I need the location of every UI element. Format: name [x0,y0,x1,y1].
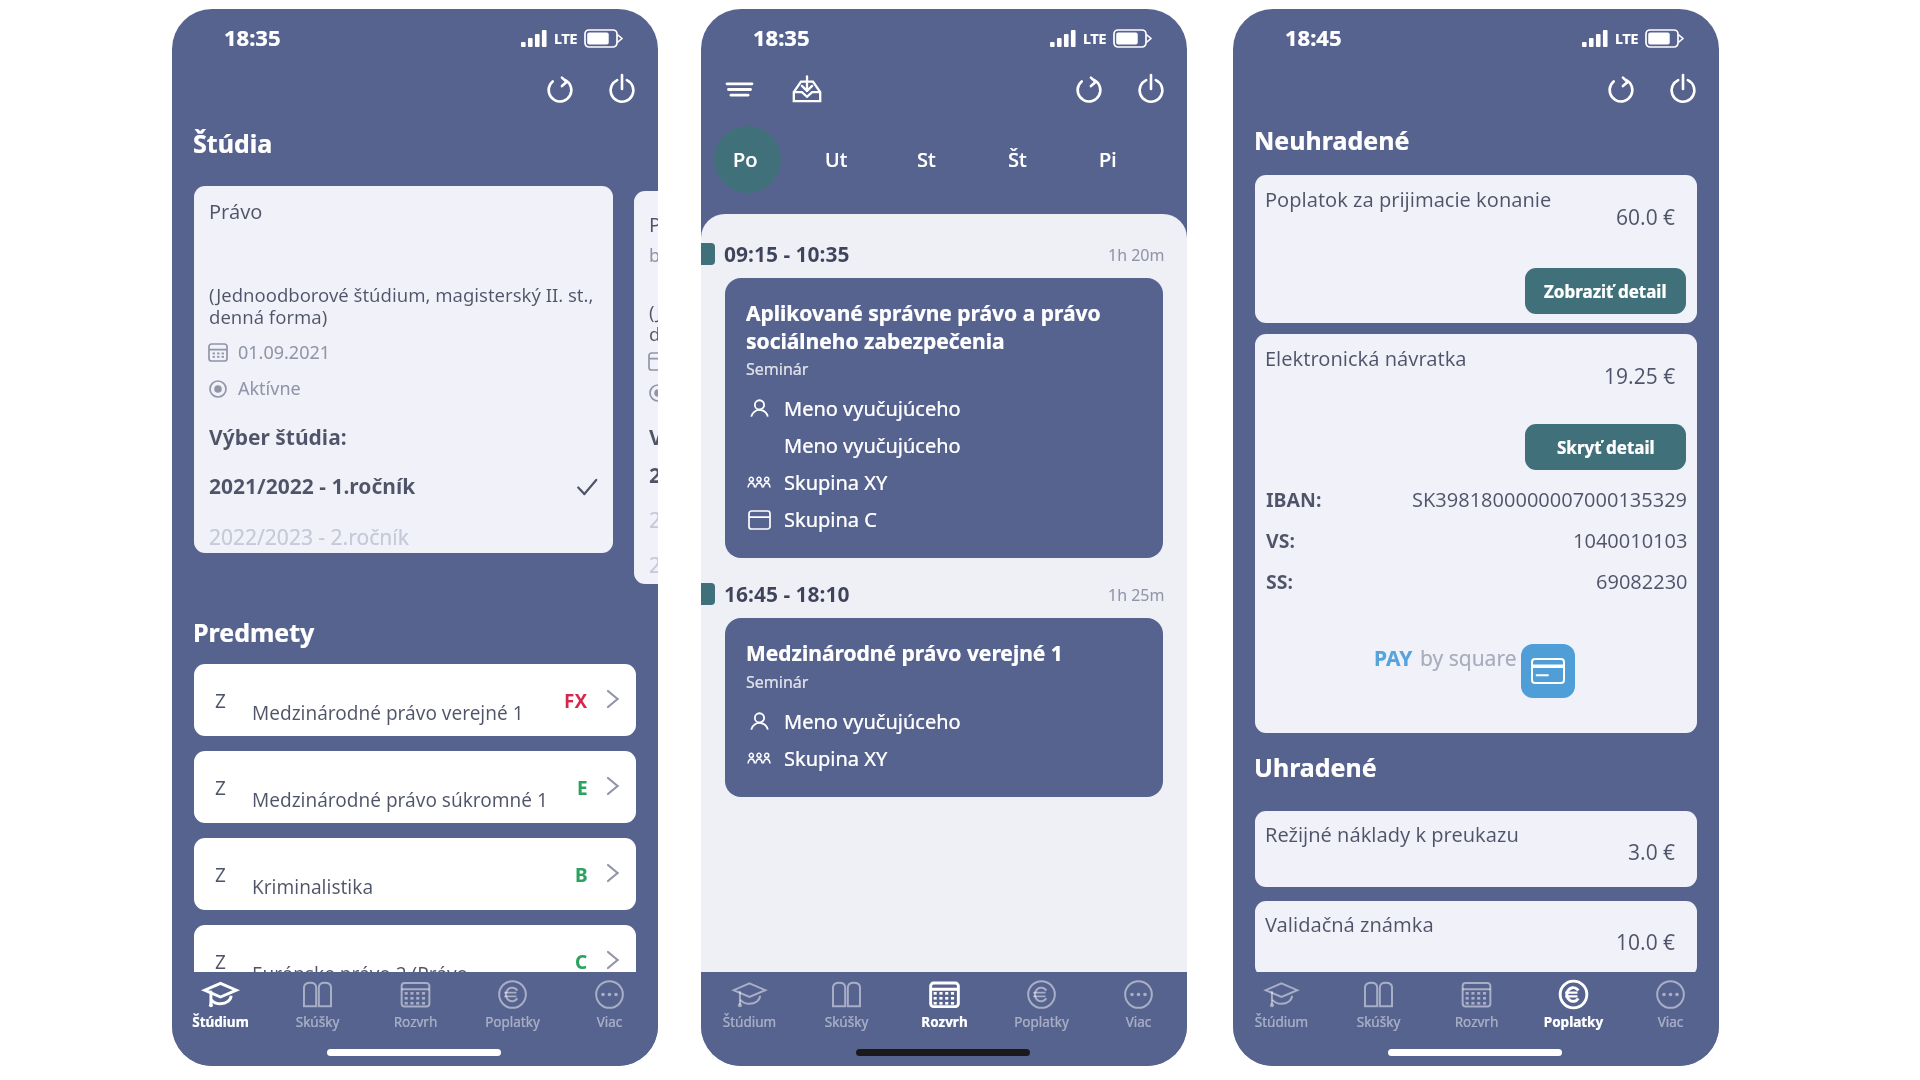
button[interactable]: Skryť detail [1525,424,1686,470]
button[interactable]: Poplatky [1525,975,1622,1037]
staticText: 2 [649,506,658,535]
staticText: Validačná známka [1265,911,1434,938]
button[interactable]: Power off [1655,61,1711,117]
button[interactable]: Ut [790,127,883,192]
staticText: Ut [825,146,848,173]
staticText: E [577,775,588,801]
button[interactable]: Viac [1622,975,1719,1037]
button[interactable]: Filter [715,65,763,113]
staticText: 1040010103 [1573,527,1688,554]
staticText: Elektronická návratka [1265,345,1467,372]
staticText: Právo [209,198,263,225]
staticText: Meno vyučujúceho [784,395,961,422]
staticText: Poplatky [1525,1013,1622,1031]
staticText: Aplikované správne právo a právo sociáln… [746,299,1101,355]
button[interactable]: Skúšky [1330,975,1427,1037]
button[interactable]: Refresh [1061,61,1117,117]
staticText: 2021/2022 - 1.ročník [209,472,416,501]
staticText: Z [215,775,226,801]
button[interactable]: Elektronická návratka [1255,334,1697,733]
staticText: Medzinárodné právo súkromné 1 [252,787,548,813]
staticText: Kriminalistika [252,874,374,900]
staticText: d [649,321,658,346]
staticText: 69082230 [1596,568,1688,595]
staticText: Štúdia [193,126,273,160]
staticText: Seminár [746,671,809,693]
staticText: Poplatky [464,1013,561,1031]
button[interactable]: Validačná známka [1255,901,1697,977]
staticText: 19.25 € [1604,362,1676,391]
staticText: Meno vyučujúceho [784,432,961,459]
button[interactable]: Inbox [779,61,835,117]
button[interactable]: Štúdium [172,975,269,1037]
button[interactable]: Rozvrh [896,975,993,1037]
button[interactable]: Z [194,664,636,736]
staticText: Skupina XY [784,469,888,496]
button[interactable]: 2021/2022 - 1.ročník [209,472,598,501]
button[interactable]: Štúdium [1233,975,1330,1037]
staticText: (J [649,299,658,324]
staticText: Viac [1622,1013,1719,1031]
staticText: 10.0 € [1616,928,1676,957]
button[interactable]: Pi [1061,127,1154,192]
button[interactable]: Poplatok za prijimacie konanie [1255,175,1697,323]
button[interactable]: Rozvrh [1428,975,1525,1037]
button[interactable]: Poplatky [993,975,1090,1037]
staticText: Medzinárodné právo verejné 1 [252,700,524,726]
staticText: LTE [1615,29,1639,48]
button[interactable]: Pay by square [1521,644,1575,698]
button[interactable]: Skúšky [269,975,366,1037]
staticText: Zobraziť detail [1544,280,1667,303]
button[interactable]: Power off [1123,61,1179,117]
staticText: Z [215,688,226,714]
staticText: IBAN: [1266,486,1322,513]
staticText: Uhradené [1254,750,1377,784]
button[interactable]: Rozvrh [367,975,464,1037]
button[interactable]: Aplikované správne právo a právo sociáln… [725,278,1163,558]
button[interactable]: Zobraziť detail [1525,268,1686,314]
staticText: Pi [1099,146,1117,173]
staticText: Skúšky [1330,1013,1427,1031]
button[interactable]: Skúšky [798,975,895,1037]
staticText: Výber štúdia: [209,423,347,452]
button[interactable]: Právo [194,186,613,553]
button[interactable]: St [880,127,973,192]
staticText: Rozvrh [1428,1013,1525,1031]
staticText: Aktívne [238,376,301,401]
staticText: 18:35 [753,22,810,52]
staticText: FX [564,688,588,714]
staticText: P [649,211,658,238]
button[interactable]: Z [194,838,636,910]
staticText: Po [733,146,758,173]
button[interactable]: Režijné náklady k preukazu [1255,811,1697,887]
button[interactable]: Št [971,127,1064,192]
staticText: Štúdium [701,1013,798,1031]
staticText: Režijné náklady k preukazu [1265,821,1519,848]
staticText: Rozvrh [896,1013,993,1031]
staticText: LTE [554,29,578,48]
button[interactable]: Viac [561,975,658,1037]
staticText: 18:45 [1285,22,1342,52]
button[interactable]: Viac [1090,975,1187,1037]
staticText: Európske právo 2 (Právo [252,961,469,987]
button[interactable]: Refresh [532,61,588,117]
staticText: C [575,949,588,975]
staticText: 01.09.2021 [238,340,331,365]
button[interactable]: Medzinárodné právo verejné 1 [725,618,1163,797]
button[interactable]: Power off [594,61,650,117]
button[interactable]: Z [194,751,636,823]
button[interactable]: Poplatky [464,975,561,1037]
staticText: St [917,146,936,173]
button[interactable]: Z [194,925,636,997]
staticText: 2 [649,461,658,490]
staticText: Viac [1090,1013,1187,1031]
staticText: Viac [561,1013,658,1031]
staticText: 2022/2023 - 2.ročník [209,523,409,552]
button[interactable]: Refresh [1593,61,1649,117]
staticText: 1h 25m [1108,584,1165,606]
staticText: Seminár [746,358,809,380]
staticText: 60.0 € [1616,203,1676,232]
button[interactable]: Štúdium [701,975,798,1037]
button[interactable]: Po [701,127,792,192]
staticText: 16:45 - 18:10 [724,580,850,606]
